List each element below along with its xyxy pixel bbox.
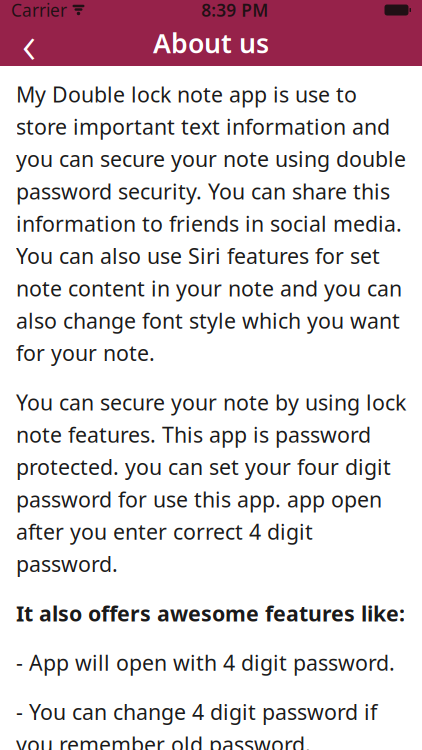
staticText: About us — [153, 25, 269, 61]
staticText: 8:39 PM — [201, 0, 268, 21]
staticText: ‹ — [22, 8, 36, 78]
staticText: My Double lock note app is use to store … — [16, 80, 406, 367]
staticText: It also offers awesome features like: — [16, 599, 405, 627]
button[interactable]: Back — [6, 20, 52, 66]
staticText: Carrier — [11, 0, 67, 21]
staticText: - You can change 4 digit password if you… — [16, 698, 377, 750]
staticText: - App will open with 4 digit password. — [16, 648, 395, 677]
staticText: You can secure your note by using lock n… — [16, 388, 406, 578]
